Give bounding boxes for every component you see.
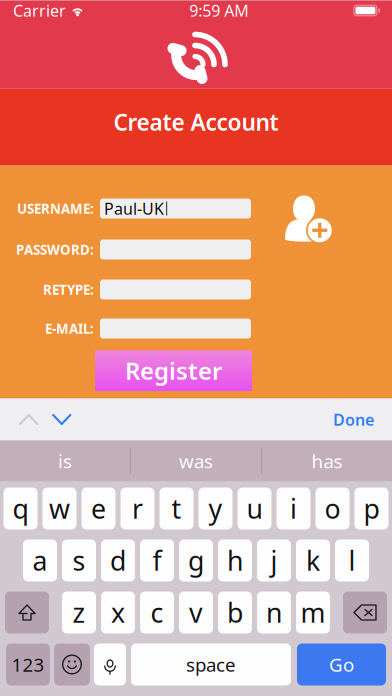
staticText: Done [333, 409, 374, 430]
staticText: a [32, 543, 47, 578]
staticText: s [72, 543, 85, 578]
button[interactable] [100, 318, 251, 338]
staticText: p [363, 491, 379, 526]
staticText: PASSWORD: [16, 241, 94, 258]
staticText: Register [125, 355, 222, 386]
button[interactable]: h [218, 539, 252, 581]
staticText: Go [329, 652, 354, 677]
staticText: f [152, 543, 161, 578]
button[interactable]: q [3, 487, 37, 529]
button[interactable]: v [179, 591, 213, 633]
button[interactable]: Paul-UK [100, 198, 251, 218]
staticText: has [311, 449, 342, 473]
staticText: RETYPE: [43, 281, 94, 298]
staticText: v [189, 595, 203, 630]
staticText: E-MAIL: [45, 320, 94, 337]
staticText: l [348, 543, 355, 578]
staticText: Paul-UK [104, 198, 164, 219]
button[interactable]: o [315, 487, 349, 529]
staticText: q [12, 491, 28, 526]
staticText: Carrier [13, 0, 66, 21]
button[interactable]: w [42, 487, 76, 529]
staticText: e [91, 491, 106, 526]
staticText: i [290, 491, 297, 526]
button[interactable]: f [140, 539, 174, 581]
staticText: b [227, 595, 243, 630]
button[interactable] [100, 239, 251, 259]
staticText: u [246, 491, 262, 526]
staticText: 9:59 AM [189, 0, 249, 21]
staticText: h [227, 543, 243, 578]
staticText: c [150, 595, 163, 630]
button[interactable]: Emoji [54, 643, 90, 685]
button[interactable]: x [101, 591, 135, 633]
button[interactable]: l [335, 539, 369, 581]
staticText: 123 [11, 652, 44, 677]
button[interactable]: u [237, 487, 271, 529]
button[interactable]: 123 [6, 643, 50, 685]
button[interactable]: Shift [5, 591, 49, 633]
button[interactable]: g [179, 539, 213, 581]
button[interactable]: y [198, 487, 232, 529]
button[interactable]: Register [95, 350, 252, 390]
staticText: w [49, 491, 70, 526]
button[interactable]: c [140, 591, 174, 633]
button[interactable]: a [23, 539, 57, 581]
button[interactable]: t [159, 487, 193, 529]
button[interactable]: p [354, 487, 388, 529]
button[interactable]: Delete [343, 591, 387, 633]
button[interactable]: Next field [52, 399, 71, 439]
button[interactable]: m [296, 591, 330, 633]
staticText: was [179, 449, 213, 473]
button[interactable]: j [257, 539, 291, 581]
staticText: space [186, 652, 236, 677]
button[interactable]: r [120, 487, 154, 529]
staticText: o [324, 491, 340, 526]
button[interactable]: b [218, 591, 252, 633]
staticText: k [306, 543, 320, 578]
staticText: g [188, 543, 204, 578]
button[interactable]: n [257, 591, 291, 633]
button[interactable]: has [262, 440, 392, 481]
button[interactable]: i [276, 487, 310, 529]
button[interactable]: Previous field [0, 399, 52, 439]
staticText: z [72, 595, 85, 630]
staticText: r [132, 491, 143, 526]
button[interactable] [100, 279, 251, 299]
staticText: d [110, 543, 126, 578]
staticText: n [266, 595, 282, 630]
staticText: y [208, 491, 222, 526]
button[interactable]: Done [319, 397, 392, 442]
staticText: x [111, 595, 125, 630]
staticText: Create Account [113, 107, 278, 137]
button[interactable]: Go [297, 643, 386, 685]
staticText: is [58, 449, 72, 473]
staticText: j [270, 543, 277, 578]
button[interactable]: s [62, 539, 96, 581]
staticText: m [300, 595, 325, 630]
button[interactable]: d [101, 539, 135, 581]
button[interactable]: is [0, 440, 130, 481]
button[interactable]: e [81, 487, 115, 529]
button[interactable]: z [62, 591, 96, 633]
staticText: t [171, 491, 181, 526]
button[interactable]: space [131, 643, 291, 685]
button[interactable]: Dictate [94, 643, 126, 685]
button[interactable]: was [131, 440, 261, 481]
staticText: USERNAME: [17, 200, 94, 217]
button[interactable]: k [296, 539, 330, 581]
